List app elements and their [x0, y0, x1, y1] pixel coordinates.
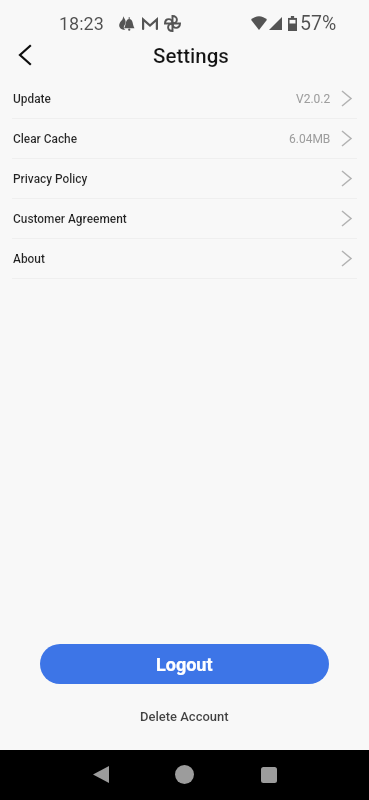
- staticText: Logout: [156, 654, 213, 675]
- staticText: 57%: [300, 12, 337, 35]
- button[interactable]: Back: [5, 38, 45, 71]
- staticText: 18:23: [59, 13, 104, 34]
- staticText: Settings: [153, 44, 229, 68]
- button[interactable]: About: [0, 239, 369, 279]
- button[interactable]: Delete Account: [0, 703, 369, 729]
- staticText: Delete Account: [140, 709, 229, 724]
- staticText: Clear Cache: [13, 132, 78, 146]
- staticText: Privacy Policy: [13, 172, 88, 186]
- button[interactable]: Home: [164, 754, 205, 795]
- staticText: V2.0.2: [296, 92, 331, 106]
- button[interactable]: Clear Cache: [0, 119, 369, 159]
- button[interactable]: Logout: [40, 644, 329, 684]
- button[interactable]: Customer Agreement: [0, 199, 369, 239]
- button[interactable]: Back: [80, 754, 121, 795]
- staticText: Customer Agreement: [13, 212, 127, 226]
- button[interactable]: Privacy Policy: [0, 159, 369, 199]
- staticText: Update: [13, 92, 51, 106]
- staticText: 6.04MB: [289, 132, 331, 146]
- button[interactable]: Recents: [248, 754, 289, 795]
- staticText: About: [13, 252, 45, 266]
- button[interactable]: Update: [0, 79, 369, 119]
